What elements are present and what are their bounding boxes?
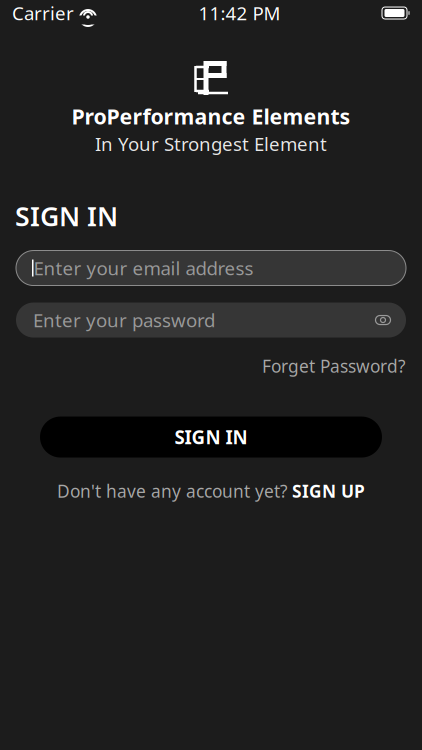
button[interactable]: Don't have any account yet?: [57, 480, 365, 503]
staticText: Don't have any account yet?: [57, 480, 288, 503]
staticText: Forget Password?: [262, 354, 406, 377]
button[interactable]: Forget Password?: [262, 354, 406, 377]
staticText: ProPerformance Elements: [71, 102, 350, 130]
button[interactable]: Enter your email address: [16, 250, 406, 285]
staticText: Enter your password: [33, 308, 215, 332]
staticText: Enter your email address: [33, 256, 253, 280]
button[interactable]: Enter your password: [16, 302, 374, 337]
staticText: 11:42 PM: [198, 1, 280, 25]
button[interactable]: Show password: [374, 302, 406, 337]
staticText: SIGN UP: [292, 480, 365, 503]
button[interactable]: SIGN IN: [40, 417, 382, 458]
staticText: Carrier: [12, 1, 74, 25]
staticText: In Your Strongest Element: [95, 131, 327, 156]
staticText: SIGN IN: [174, 425, 247, 449]
staticText: SIGN IN: [15, 198, 118, 233]
